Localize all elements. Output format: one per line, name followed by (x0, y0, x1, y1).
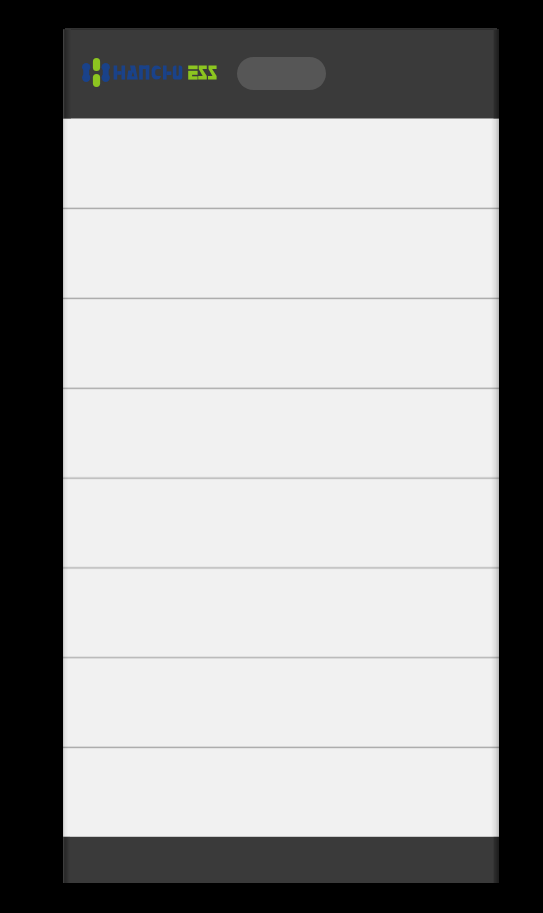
button[interactable]: Battery module 6 (63, 568, 499, 658)
button[interactable]: Battery module 8 (63, 748, 499, 838)
button[interactable]: Battery module 2 (63, 208, 499, 298)
button[interactable]: Base power unit (63, 838, 499, 884)
button[interactable]: Battery module 1 (63, 118, 499, 208)
button[interactable]: Battery module 4 (63, 388, 499, 478)
button[interactable]: Battery module 3 (63, 298, 499, 388)
button[interactable]: Battery module 7 (63, 658, 499, 748)
button[interactable]: Battery module 5 (63, 478, 499, 568)
button[interactable]: Status display (237, 57, 326, 90)
button[interactable]: Hanchu ESS (83, 57, 219, 91)
